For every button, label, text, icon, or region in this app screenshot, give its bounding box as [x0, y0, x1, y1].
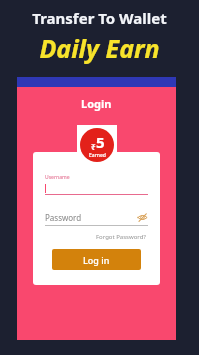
staticText: Log in	[83, 254, 110, 266]
staticText: Daily Earn	[39, 31, 160, 65]
button[interactable]: 5 rupees earned	[77, 125, 117, 165]
staticText: Earned	[89, 152, 106, 159]
staticText: 5	[96, 132, 105, 152]
staticText: Username	[45, 174, 70, 181]
staticText: Login	[81, 96, 112, 111]
button[interactable]: Forgot Password?	[94, 231, 148, 243]
staticText: Transfer To Wallet	[32, 8, 167, 28]
staticText: Password	[45, 212, 136, 223]
staticText: ₹	[91, 141, 96, 152]
button[interactable]: Log in	[52, 249, 141, 270]
button[interactable]: Show password	[136, 211, 148, 223]
